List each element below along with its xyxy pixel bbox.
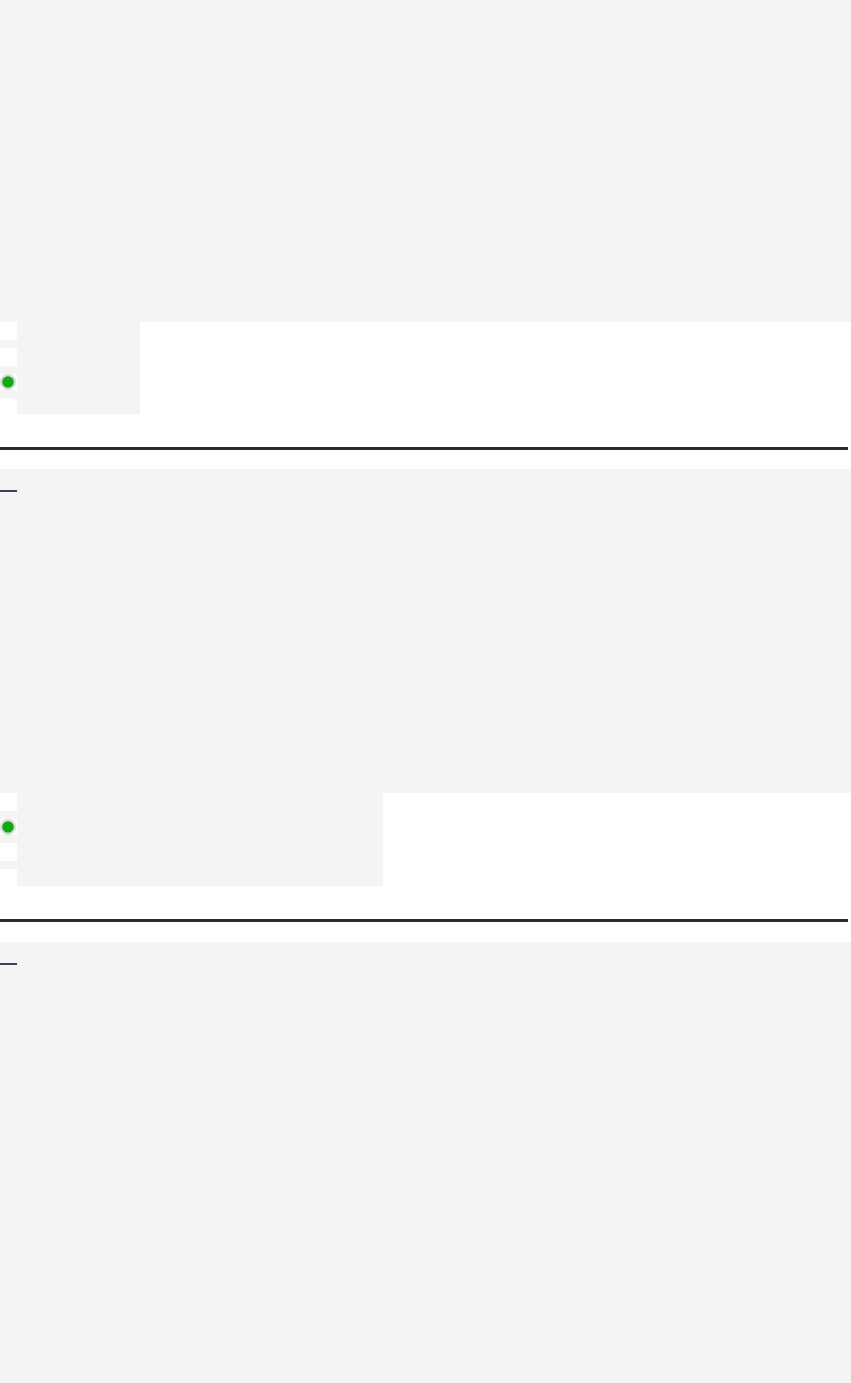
- button[interactable]: Active item, online: [0, 819, 17, 835]
- button[interactable]: Active item, online: [0, 374, 17, 390]
